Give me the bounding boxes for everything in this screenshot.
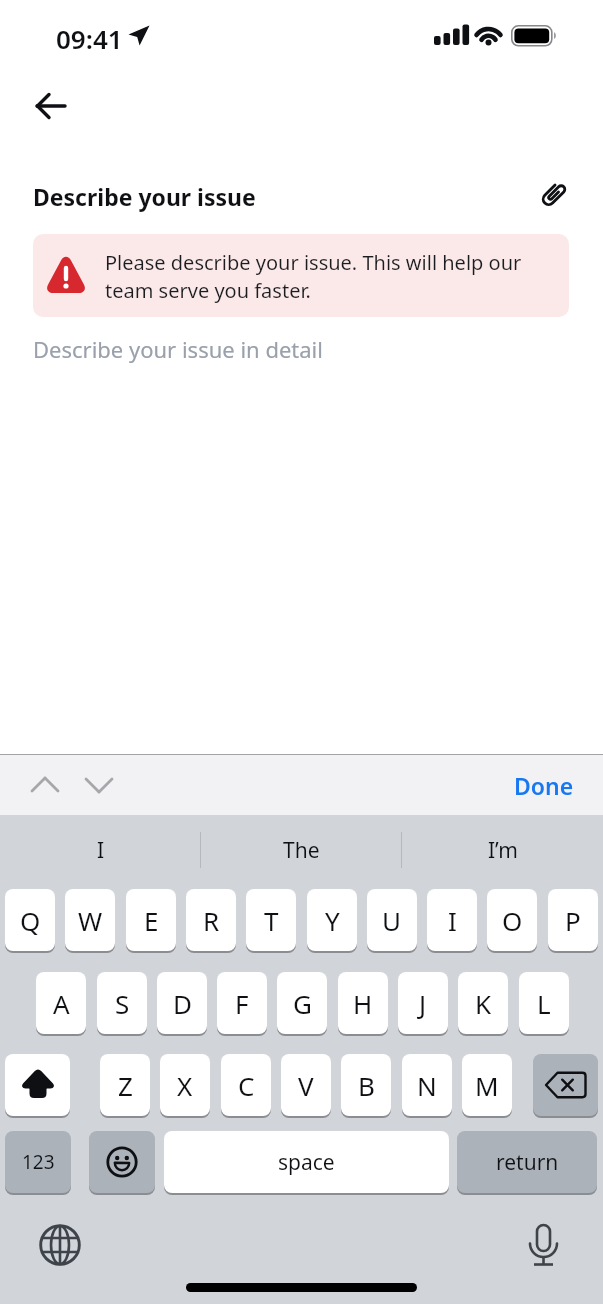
- button[interactable]: G: [277, 972, 327, 1034]
- button[interactable]: [18, 770, 62, 800]
- staticText: I: [448, 903, 457, 938]
- staticText: Y: [325, 903, 340, 938]
- staticText: J: [419, 986, 427, 1021]
- button[interactable]: [533, 1054, 598, 1116]
- staticText: T: [264, 903, 279, 938]
- staticText: M: [475, 1068, 499, 1103]
- staticText: F: [235, 986, 249, 1021]
- staticText: P: [565, 903, 581, 938]
- button[interactable]: M: [462, 1054, 512, 1116]
- button[interactable]: A: [36, 972, 86, 1034]
- staticText: K: [475, 986, 492, 1021]
- staticText: return: [496, 1148, 559, 1177]
- staticText: U: [382, 903, 402, 938]
- staticText: Q: [20, 903, 41, 938]
- button[interactable]: S: [97, 972, 147, 1034]
- button[interactable]: I: [0, 818, 201, 882]
- staticText: H: [353, 986, 373, 1021]
- button[interactable]: Z: [100, 1054, 150, 1116]
- staticText: The: [283, 836, 320, 865]
- button[interactable]: H: [338, 972, 388, 1034]
- staticText: V: [298, 1068, 314, 1103]
- button[interactable]: R: [186, 889, 236, 951]
- button[interactable]: E: [126, 889, 176, 951]
- button[interactable]: N: [402, 1054, 452, 1116]
- button[interactable]: Y: [307, 889, 357, 951]
- button[interactable]: space: [164, 1131, 449, 1193]
- staticText: W: [78, 903, 103, 938]
- button[interactable]: [535, 177, 571, 213]
- button[interactable]: [5, 1054, 70, 1116]
- button[interactable]: B: [341, 1054, 391, 1116]
- button[interactable]: Q: [5, 889, 55, 951]
- button[interactable]: return: [457, 1131, 597, 1193]
- staticText: 09:41: [56, 21, 123, 56]
- staticText: X: [177, 1068, 193, 1103]
- staticText: O: [502, 903, 523, 938]
- staticText: C: [238, 1068, 255, 1103]
- staticText: G: [293, 986, 312, 1021]
- button[interactable]: F: [217, 972, 267, 1034]
- staticText: Describe your issue: [33, 181, 256, 212]
- staticText: Z: [118, 1068, 133, 1103]
- button[interactable]: [30, 85, 72, 127]
- staticText: 123: [22, 1149, 55, 1175]
- button[interactable]: 123: [5, 1131, 71, 1193]
- staticText: A: [53, 986, 70, 1021]
- button[interactable]: [89, 1131, 155, 1193]
- staticText: B: [358, 1068, 375, 1103]
- staticText: Describe your issue in detail: [33, 334, 323, 364]
- button[interactable]: W: [65, 889, 115, 951]
- button[interactable]: [72, 770, 116, 800]
- button[interactable]: X: [160, 1054, 210, 1116]
- button[interactable]: C: [221, 1054, 271, 1116]
- button[interactable]: O: [487, 889, 537, 951]
- staticText: I: [97, 836, 105, 865]
- staticText: E: [144, 903, 159, 938]
- staticText: D: [173, 986, 192, 1021]
- button[interactable]: [524, 1222, 564, 1270]
- button[interactable]: I: [427, 889, 477, 951]
- button[interactable]: U: [367, 889, 417, 951]
- button[interactable]: T: [246, 889, 296, 951]
- button[interactable]: P: [548, 889, 598, 951]
- button[interactable]: [38, 1223, 82, 1267]
- button[interactable]: D: [157, 972, 207, 1034]
- button[interactable]: The: [201, 818, 402, 882]
- staticText: R: [203, 903, 220, 938]
- staticText: Done: [514, 770, 574, 801]
- staticText: S: [115, 986, 130, 1021]
- staticText: space: [278, 1148, 335, 1177]
- button[interactable]: J: [398, 972, 448, 1034]
- button[interactable]: L: [519, 972, 569, 1034]
- staticText: Please describe your issue. This will he…: [105, 249, 522, 304]
- staticText: N: [417, 1068, 437, 1103]
- button[interactable]: I’m: [402, 818, 603, 882]
- button[interactable]: K: [458, 972, 508, 1034]
- staticText: I’m: [488, 836, 518, 865]
- staticText: L: [537, 986, 551, 1021]
- button[interactable]: V: [281, 1054, 331, 1116]
- button[interactable]: Done: [514, 770, 574, 801]
